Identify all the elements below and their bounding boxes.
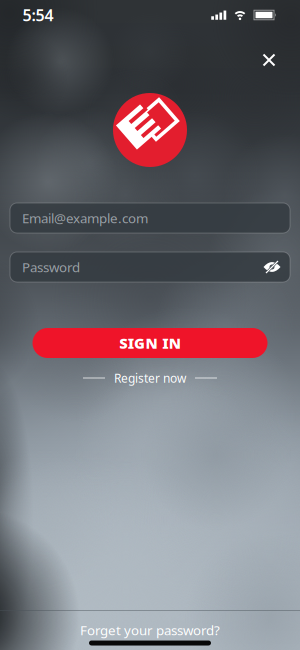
button[interactable]: Forget your password? [80, 621, 220, 639]
button[interactable]: Password [10, 252, 290, 282]
staticText: Password [22, 258, 80, 276]
staticText: SIGN IN [119, 333, 181, 353]
staticText: Forget your password? [80, 621, 220, 639]
staticText: 5:54 [22, 4, 53, 26]
button[interactable]: SIGN IN [32, 328, 267, 358]
staticText: Register now [114, 370, 186, 386]
button[interactable]: Email@example.com [10, 203, 290, 233]
button[interactable]: Register now [114, 370, 186, 386]
button[interactable]: Show password [257, 253, 286, 280]
button[interactable]: Close [254, 45, 283, 74]
staticText: Email@example.com [22, 209, 148, 227]
